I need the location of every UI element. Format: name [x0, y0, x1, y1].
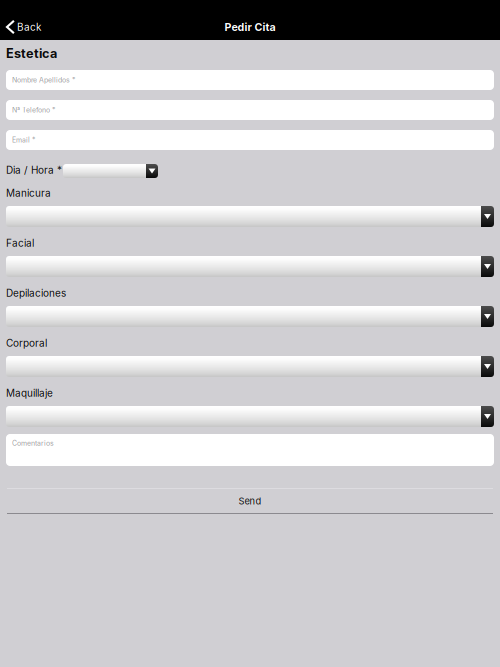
staticText: Corporal	[6, 337, 47, 349]
staticText: Dia / Hora *	[6, 164, 62, 176]
button[interactable]: Send	[7, 488, 493, 514]
staticText: Nª Telefono *	[12, 106, 55, 114]
button[interactable]: Facial	[6, 256, 494, 277]
staticText: Nombre Apellidos *	[12, 76, 75, 84]
button[interactable]: Maquillaje	[6, 406, 494, 427]
button[interactable]: Nª Telefono *	[6, 100, 494, 120]
staticText: Pedir Cita	[224, 20, 275, 33]
button[interactable]: Nombre Apellidos *	[6, 70, 494, 90]
staticText: Back	[17, 21, 41, 33]
staticText: Email *	[12, 136, 35, 144]
button[interactable]: Corporal	[6, 356, 494, 377]
staticText: Manicura	[6, 187, 51, 199]
button[interactable]: Comentarios	[6, 434, 494, 466]
staticText: Maquillaje	[6, 387, 53, 399]
button[interactable]: Manicura	[6, 206, 494, 227]
button[interactable]: Email *	[6, 130, 494, 150]
staticText: Comentarios	[12, 439, 54, 447]
button[interactable]: Depilaciones	[6, 306, 494, 327]
staticText: Depilaciones	[6, 287, 66, 299]
staticText: Estetica	[6, 46, 57, 61]
button[interactable]: Dia / Hora	[63, 164, 158, 178]
staticText: Send	[238, 495, 261, 507]
staticText: Facial	[6, 237, 34, 249]
button[interactable]: Back	[0, 15, 41, 39]
